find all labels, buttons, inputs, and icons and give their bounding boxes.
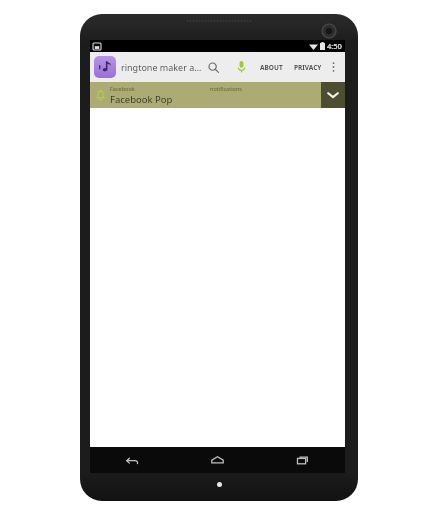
button[interactable]: Recent apps <box>260 447 345 473</box>
button[interactable]: Voice search <box>231 57 251 77</box>
staticText: 4:50 <box>327 41 342 51</box>
staticText: Facebook Pop <box>110 93 173 106</box>
staticText: Facebook <box>110 85 135 92</box>
staticText: ABOUT <box>260 63 283 72</box>
staticText: ringtone maker and mp… <box>121 61 203 73</box>
button[interactable]: Facebook <box>90 82 345 108</box>
button[interactable]: Expand <box>321 82 345 108</box>
button[interactable]: App icon <box>94 56 116 78</box>
button[interactable]: Home <box>175 447 260 473</box>
staticText: notifications <box>210 85 242 92</box>
staticText: PRIVACY <box>294 63 322 72</box>
button[interactable]: ABOUT <box>257 59 286 76</box>
button[interactable]: PRIVACY <box>291 59 325 76</box>
button[interactable]: Back <box>90 447 175 473</box>
button[interactable]: More options <box>325 55 341 79</box>
button[interactable]: Search <box>203 57 223 77</box>
